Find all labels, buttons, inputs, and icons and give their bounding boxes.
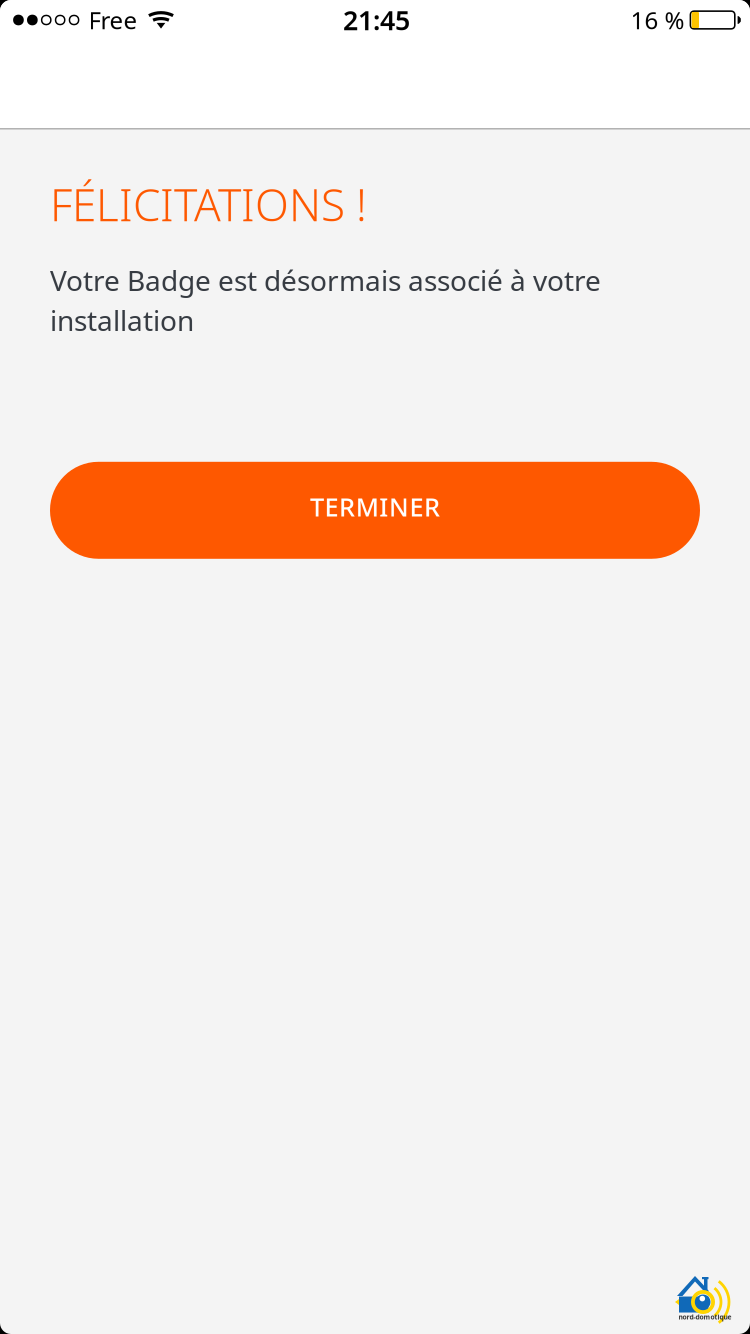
staticText: Free [88, 4, 137, 36]
staticText: 16 % [631, 4, 685, 36]
staticText: Votre Badge est désormais associé à votr… [50, 261, 601, 339]
button[interactable]: TERMINER [50, 462, 700, 559]
staticText: TERMINER [310, 490, 440, 524]
staticText: 21:45 [343, 2, 410, 38]
staticText: nord-domotique [678, 1312, 731, 1321]
staticText: FÉLICITATIONS ! [50, 175, 367, 233]
